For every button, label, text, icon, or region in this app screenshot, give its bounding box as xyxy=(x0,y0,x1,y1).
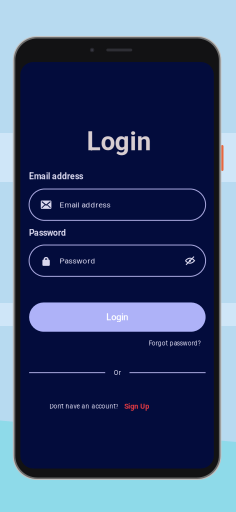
button[interactable]: Sign Up xyxy=(118,402,149,410)
staticText: Forgot password? xyxy=(149,339,201,347)
staticText: Or xyxy=(114,369,121,376)
staticText: Login xyxy=(87,126,151,156)
button[interactable]: Forgot password? xyxy=(24,339,206,347)
staticText: Password xyxy=(60,256,96,265)
staticText: Login xyxy=(106,312,128,322)
staticText: Password xyxy=(29,228,66,238)
staticText: Email address xyxy=(60,200,111,209)
button[interactable]: Login xyxy=(29,302,206,332)
staticText: Don't have an account? xyxy=(49,402,118,410)
staticText: Sign Up xyxy=(124,402,149,410)
staticText: Email address xyxy=(29,171,83,181)
